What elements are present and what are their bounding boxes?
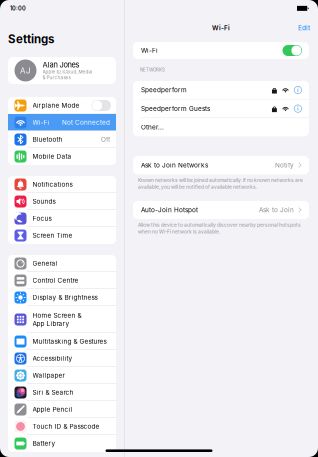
- staticText: Focus: [32, 215, 51, 222]
- staticText: available, you will be notified of avail…: [138, 184, 257, 190]
- staticText: Not Connected: [62, 119, 110, 126]
- button[interactable]: Multitasking & Gestures: [8, 333, 116, 350]
- button[interactable]: Screen Time: [8, 227, 116, 244]
- staticText: Apple ID, iCloud, Media: [42, 69, 92, 75]
- button[interactable]: Sounds: [8, 193, 116, 210]
- button[interactable]: Speedperform Guests: [133, 100, 309, 118]
- button[interactable]: Wi-Fi: [8, 114, 116, 131]
- staticText: General: [32, 260, 57, 267]
- button[interactable]: Accessibility: [8, 350, 116, 367]
- staticText: Touch ID & Passcode: [32, 423, 99, 430]
- staticText: Speedperform: [141, 86, 187, 94]
- staticText: Notify: [275, 161, 294, 169]
- staticText: Known networks will be joined automatica…: [138, 177, 303, 183]
- staticText: Wi-Fi: [32, 119, 49, 126]
- button[interactable]: Ask to Join Networks: [133, 156, 309, 174]
- staticText: Wallpaper: [32, 372, 64, 379]
- staticText: Mobile Data: [32, 153, 71, 160]
- button[interactable]: Touch ID & Passcode: [8, 418, 116, 435]
- staticText: App Library: [32, 320, 69, 327]
- staticText: Wi-Fi: [212, 24, 230, 32]
- staticText: 10:00: [10, 5, 26, 12]
- staticText: Siri & Search: [32, 389, 73, 396]
- button[interactable]: Other...: [133, 118, 309, 136]
- staticText: Notifications: [32, 181, 72, 188]
- button[interactable]: AJ: [8, 57, 116, 84]
- staticText: Accessibility: [32, 355, 72, 362]
- button[interactable]: Speedperform: [133, 81, 309, 99]
- button[interactable]: Wi-Fi: [282, 45, 302, 56]
- staticText: Wi-Fi: [141, 47, 158, 54]
- staticText: Other...: [141, 123, 164, 131]
- button[interactable]: Mobile Data: [8, 148, 116, 165]
- button[interactable]: Notifications: [8, 176, 116, 193]
- staticText: & Purchases: [42, 75, 70, 80]
- staticText: Home Screen &: [32, 311, 81, 319]
- button[interactable]: Battery: [8, 435, 116, 452]
- staticText: Display & Brightness: [32, 294, 97, 301]
- button[interactable]: Auto-Join Hotspot: [133, 201, 309, 219]
- button[interactable]: Wallpaper: [8, 367, 116, 384]
- staticText: Settings: [8, 32, 54, 46]
- staticText: Off: [101, 136, 110, 143]
- button[interactable]: Siri & Search: [8, 384, 116, 401]
- staticText: Battery: [32, 440, 55, 447]
- staticText: Ask to Join Networks: [141, 161, 208, 169]
- button[interactable]: Bluetooth: [8, 131, 116, 148]
- button[interactable]: Edit: [292, 20, 318, 36]
- staticText: Control Centre: [32, 277, 78, 284]
- staticText: when no Wi-Fi network is available.: [138, 229, 220, 235]
- button[interactable]: Home Screen &: [8, 306, 116, 333]
- button[interactable]: Focus: [8, 210, 116, 227]
- button[interactable]: Control Centre: [8, 272, 116, 289]
- staticText: NETWORKS: [140, 67, 165, 73]
- button[interactable]: Toggle: [91, 100, 111, 111]
- staticText: Edit: [298, 24, 310, 32]
- staticText: AJ: [20, 66, 31, 75]
- staticText: Apple Pencil: [32, 406, 72, 413]
- staticText: Bluetooth: [32, 136, 62, 143]
- staticText: Allow this device to automatically disco…: [138, 222, 301, 228]
- button[interactable]: Airplane Mode: [8, 97, 116, 114]
- button[interactable]: Display & Brightness: [8, 289, 116, 306]
- staticText: Airplane Mode: [32, 102, 79, 109]
- staticText: Alan Jones: [42, 60, 79, 69]
- button[interactable]: General: [8, 255, 116, 272]
- staticText: Auto-Join Hotspot: [141, 206, 198, 214]
- staticText: Multitasking & Gestures: [32, 338, 106, 345]
- staticText: Speedperform Guests: [141, 105, 210, 112]
- button[interactable]: Apple Pencil: [8, 401, 116, 418]
- staticText: Sounds: [32, 198, 55, 205]
- staticText: Screen Time: [32, 232, 72, 239]
- staticText: Ask to Join: [259, 206, 294, 214]
